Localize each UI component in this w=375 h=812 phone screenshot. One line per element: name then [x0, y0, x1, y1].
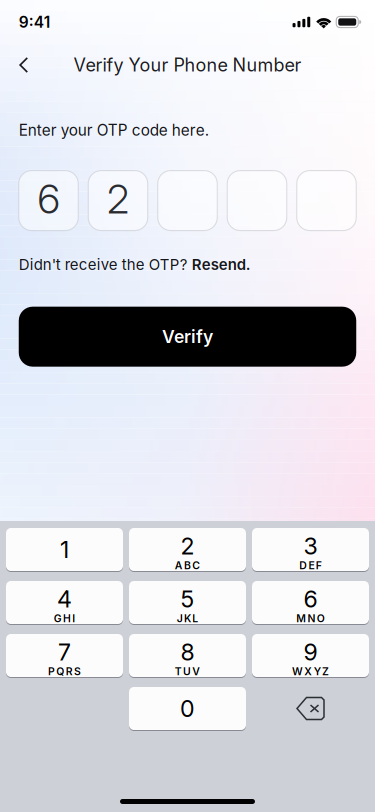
staticText: 5	[180, 585, 194, 613]
button[interactable]: 5	[129, 581, 246, 624]
staticText: 6	[303, 585, 317, 613]
button[interactable]: 1	[6, 528, 123, 571]
staticText: 0	[180, 694, 195, 723]
staticText: JKL	[177, 612, 198, 625]
staticText: 4	[57, 585, 72, 613]
staticText: 9	[303, 638, 317, 666]
button[interactable]: 8	[129, 634, 246, 677]
staticText: WXYZ	[292, 665, 329, 678]
button[interactable]: Resend.	[192, 256, 251, 274]
staticText: 6	[37, 175, 59, 223]
button[interactable]: Back	[7, 44, 41, 86]
staticText: Didn't receive the OTP?	[19, 256, 192, 274]
button[interactable]: Delete	[252, 687, 369, 730]
button[interactable]: 4	[6, 581, 123, 624]
staticText: TUV	[175, 665, 200, 678]
staticText: PQRS	[48, 665, 81, 678]
button[interactable]: 6	[252, 581, 369, 624]
staticText: GHI	[54, 612, 75, 625]
staticText: 2	[180, 532, 194, 560]
staticText: 2	[107, 175, 129, 223]
staticText: MNO	[296, 612, 325, 625]
staticText: 1	[60, 535, 69, 564]
staticText: Resend.	[192, 256, 251, 274]
button[interactable]: 2	[129, 528, 246, 571]
button[interactable]: Verify	[19, 307, 356, 367]
staticText: Enter your OTP code here.	[19, 121, 209, 140]
button[interactable]: 3	[252, 528, 369, 571]
staticText: 8	[180, 638, 194, 666]
button[interactable]: 9	[252, 634, 369, 677]
staticText: 7	[58, 638, 71, 666]
staticText: Verify Your Phone Number	[73, 54, 301, 76]
staticText: ABC	[175, 559, 200, 572]
staticText: 3	[303, 532, 317, 560]
staticText: DEF	[299, 559, 322, 572]
staticText: 9:41	[19, 13, 51, 31]
button[interactable]: 7	[6, 634, 123, 677]
staticText: Verify	[162, 326, 213, 347]
button[interactable]: 0	[129, 687, 246, 730]
